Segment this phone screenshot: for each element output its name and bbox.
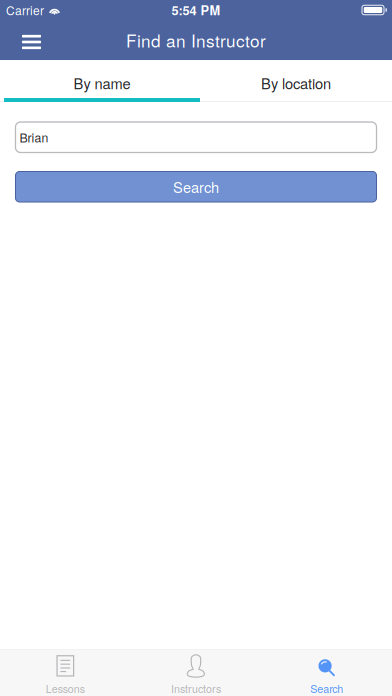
staticText: Carrier xyxy=(6,1,44,19)
button[interactable]: Search xyxy=(261,649,392,696)
staticText: Find an Instructor xyxy=(126,28,266,52)
staticText: Search xyxy=(173,176,219,197)
button[interactable]: Instructors xyxy=(131,649,261,696)
button[interactable]: Menu xyxy=(0,20,54,60)
staticText: 5:54 PM xyxy=(171,1,220,19)
staticText: Search xyxy=(310,681,343,696)
button[interactable]: Search xyxy=(15,171,376,202)
staticText: By location xyxy=(261,72,331,93)
staticText: By name xyxy=(73,72,130,93)
button[interactable]: By name xyxy=(4,60,200,98)
staticText: Instructors xyxy=(171,681,221,696)
staticText: Lessons xyxy=(46,681,85,696)
staticText: Brian xyxy=(19,128,48,146)
button[interactable]: By location xyxy=(200,60,392,98)
button[interactable]: Lessons xyxy=(0,649,131,696)
